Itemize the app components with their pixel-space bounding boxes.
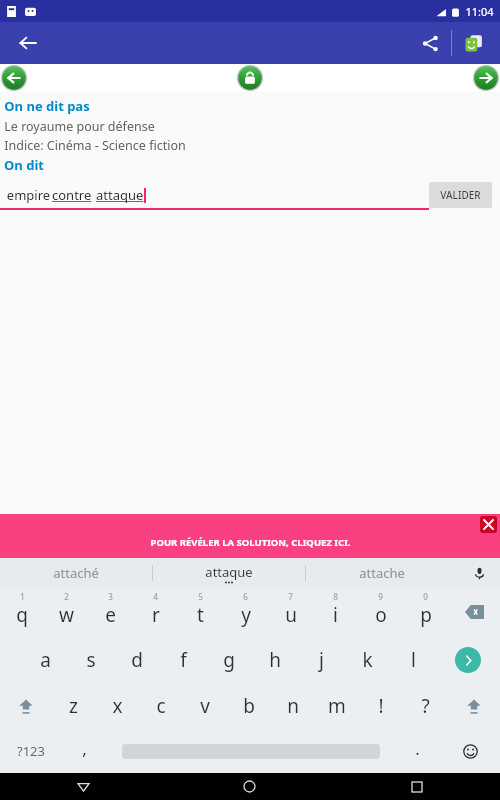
staticText: f	[180, 647, 187, 673]
staticText: On ne dit pas	[4, 97, 90, 115]
staticText: o	[375, 602, 387, 628]
button[interactable]: a	[22, 636, 68, 683]
button[interactable]: 4	[133, 588, 178, 636]
staticText: a	[40, 647, 51, 673]
button[interactable]: ,	[61, 729, 107, 773]
button[interactable]: Shift	[0, 683, 52, 729]
button[interactable]: Enter	[436, 636, 500, 683]
button[interactable]: Recents	[333, 773, 500, 800]
button[interactable]: App	[452, 26, 494, 60]
staticText: l	[411, 647, 416, 673]
button[interactable]: v	[183, 683, 227, 729]
staticText: 0	[423, 591, 428, 602]
staticText: Le royaume pour défense	[4, 118, 155, 135]
staticText: z	[69, 693, 78, 719]
button[interactable]: d	[114, 636, 160, 683]
staticText: d	[131, 647, 143, 673]
button[interactable]: n	[271, 683, 315, 729]
staticText: 11:04	[465, 4, 494, 19]
button[interactable]: Voice input	[458, 558, 500, 588]
staticText: 4	[153, 591, 158, 602]
staticText: w	[59, 602, 74, 628]
staticText: u	[285, 602, 297, 628]
button[interactable]: j	[298, 636, 344, 683]
button[interactable]: Next	[473, 65, 499, 91]
button[interactable]: k	[344, 636, 390, 683]
button[interactable]: 8	[313, 588, 358, 636]
staticText: attaché	[53, 564, 99, 582]
button[interactable]: Locked	[237, 65, 263, 91]
button[interactable]: 9	[358, 588, 403, 636]
button[interactable]: s	[68, 636, 114, 683]
button[interactable]: Backspace	[448, 588, 500, 636]
staticText: h	[269, 647, 281, 673]
button[interactable]: h	[252, 636, 298, 683]
button[interactable]: l	[390, 636, 436, 683]
staticText: 9	[378, 591, 383, 602]
button[interactable]: ?123	[0, 729, 61, 773]
button[interactable]: Home	[166, 773, 333, 800]
staticText: 7	[288, 591, 293, 602]
button[interactable]: .	[394, 729, 440, 773]
button[interactable]: 3	[88, 588, 133, 636]
staticText: POUR RÉVÉLER LA SOLUTION, CLIQUEZ ICI.	[150, 536, 351, 549]
button[interactable]: 5	[178, 588, 223, 636]
staticText: 8	[333, 591, 338, 602]
staticText: ,	[82, 737, 87, 760]
staticText: empire	[5, 186, 52, 204]
staticText: m	[328, 693, 346, 719]
button[interactable]: g	[206, 636, 252, 683]
staticText: attache	[359, 564, 405, 582]
staticText: 5	[198, 591, 203, 602]
button[interactable]: 2	[44, 588, 88, 636]
staticText: j	[319, 647, 324, 673]
staticText: Indice: Cinéma - Science fiction	[4, 137, 186, 154]
staticText: k	[362, 647, 373, 673]
button[interactable]: POUR RÉVÉLER LA SOLUTION, CLIQUEZ ICI.	[0, 514, 500, 558]
button[interactable]: Emoji	[440, 729, 500, 773]
button[interactable]: ?	[403, 683, 447, 729]
staticText: 2	[64, 591, 69, 602]
button[interactable]: b	[227, 683, 271, 729]
button[interactable]: 6	[223, 588, 268, 636]
staticText: i	[333, 602, 338, 628]
staticText: On dit	[4, 156, 44, 174]
staticText: q	[16, 602, 28, 628]
staticText: v	[200, 693, 210, 719]
button[interactable]: Shift	[447, 683, 500, 729]
staticText: t	[197, 602, 204, 628]
button[interactable]: 0	[403, 588, 448, 636]
button[interactable]: z	[52, 683, 95, 729]
button[interactable]: m	[315, 683, 359, 729]
button[interactable]: attache	[306, 558, 458, 588]
button[interactable]: Share	[409, 26, 451, 60]
button[interactable]: c	[139, 683, 183, 729]
staticText: .	[415, 737, 420, 760]
staticText: y	[241, 602, 251, 628]
staticText: s	[86, 647, 96, 673]
button[interactable]: f	[160, 636, 206, 683]
button[interactable]: empire	[0, 180, 429, 210]
button[interactable]: attaché	[0, 558, 152, 588]
button[interactable]: attaque	[153, 558, 305, 588]
button[interactable]: Close	[480, 516, 497, 533]
staticText: 6	[243, 591, 248, 602]
button[interactable]: x	[95, 683, 139, 729]
button[interactable]: 1	[0, 588, 44, 636]
staticText: attaque	[205, 563, 253, 581]
button[interactable]: VALIDER	[429, 182, 492, 208]
staticText: r	[152, 602, 160, 628]
button[interactable]: Back	[8, 23, 48, 63]
staticText: b	[243, 693, 255, 719]
staticText: 3	[108, 591, 113, 602]
button[interactable]: Previous	[1, 65, 27, 91]
staticText: c	[156, 693, 166, 719]
staticText: ?123	[17, 742, 45, 760]
button[interactable]: Back	[0, 773, 166, 800]
staticText: p	[420, 602, 432, 628]
button[interactable]: Space	[107, 729, 394, 773]
staticText: ?	[421, 693, 430, 719]
button[interactable]: 7	[268, 588, 313, 636]
button[interactable]: !	[359, 683, 403, 729]
